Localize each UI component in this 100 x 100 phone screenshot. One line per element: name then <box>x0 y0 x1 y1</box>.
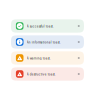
button[interactable]: Dismiss <box>76 71 81 77</box>
button[interactable]: Dismiss <box>76 55 81 61</box>
staticText: An informational toast. <box>27 41 61 44</box>
button[interactable]: Dismiss <box>76 39 81 45</box>
staticText: A warning toast. <box>27 57 51 60</box>
staticText: A successful toast. <box>27 25 54 28</box>
button[interactable]: Dismiss <box>76 23 81 29</box>
staticText: A destructive toast. <box>27 73 56 76</box>
